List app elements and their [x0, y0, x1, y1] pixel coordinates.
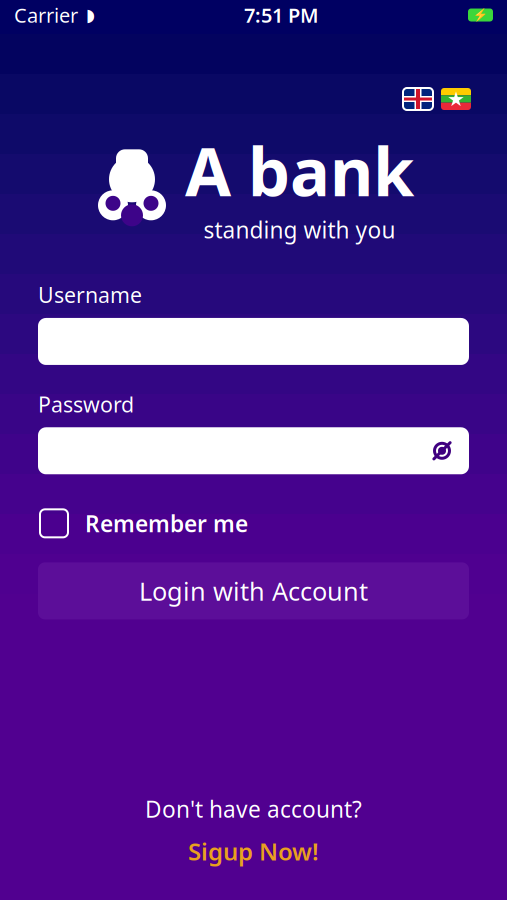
staticText: 7:51 PM [244, 2, 319, 28]
staticText: Password [38, 390, 134, 418]
staticText: Don't have account? [145, 794, 362, 824]
staticText: A bank [185, 126, 414, 214]
button[interactable]: Show password [429, 438, 469, 464]
staticText: Remember me [85, 508, 248, 538]
staticText: Sigup Now! [188, 835, 319, 867]
staticText: Carrier [14, 2, 78, 28]
button[interactable]: Sigup Now! [170, 832, 337, 870]
button[interactable]: Remember me [38, 498, 469, 548]
staticText: Login with Account [139, 574, 368, 608]
staticText: Username [38, 281, 142, 309]
staticText: ◗ [86, 5, 95, 25]
staticText: ★ [447, 88, 465, 110]
button[interactable]: English [403, 88, 433, 110]
button[interactable]: Myanmar [441, 88, 471, 110]
staticText: ⚡ [473, 8, 488, 22]
staticText: standing with you [203, 214, 395, 245]
button[interactable]: Login with Account [38, 562, 469, 619]
